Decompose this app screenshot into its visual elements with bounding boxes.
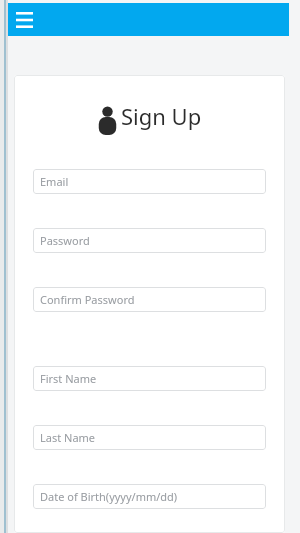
button[interactable]: Confirm Password: [33, 287, 266, 312]
staticText: Last Name: [40, 430, 96, 445]
button[interactable]: First Name: [33, 366, 266, 391]
staticText: First Name: [40, 371, 97, 386]
button[interactable]: Password: [33, 228, 266, 253]
staticText: Date of Birth(yyyy/mm/dd): [40, 489, 178, 504]
staticText: Email: [40, 174, 69, 189]
staticText: Sign Up: [121, 101, 202, 131]
button[interactable]: Open navigation menu: [13, 9, 35, 31]
button[interactable]: Last Name: [33, 425, 266, 450]
staticText: Password: [40, 233, 90, 248]
button[interactable]: Date of Birth(yyyy/mm/dd): [33, 484, 266, 509]
button[interactable]: Email: [33, 169, 266, 194]
staticText: Confirm Password: [40, 292, 135, 307]
